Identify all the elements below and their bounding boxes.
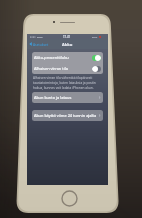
staticText: Asetukset xyxy=(33,42,49,46)
button[interactable]: Akun käyttö viime 24 tunnin ajalta xyxy=(32,110,103,121)
staticText: Akku xyxy=(62,42,73,47)
staticText: Akku-prosenttiluku xyxy=(34,55,69,60)
staticText: 24 % xyxy=(92,35,98,38)
button[interactable]: Akun kunto ja lataus xyxy=(32,92,103,103)
staticText: 17.41 xyxy=(63,35,71,39)
button[interactable]: Akku-prosenttiluku xyxy=(32,52,103,63)
staticText: Alhaisen virran tila xyxy=(34,66,68,71)
staticText: Akun käyttö viime 24 tunnin ajalta xyxy=(34,113,97,118)
staticText: Elisa xyxy=(37,35,43,38)
button[interactable]: Alhaisen virran tila xyxy=(32,63,103,74)
staticText: Akun kunto ja lataus xyxy=(34,95,72,100)
staticText: Alhaisen virran tila vähentää tilapäises… xyxy=(33,76,102,89)
button[interactable]: Back to Asetukset xyxy=(27,41,51,47)
